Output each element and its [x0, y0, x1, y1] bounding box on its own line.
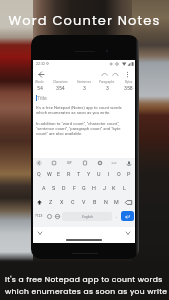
staticText: Characters	[53, 80, 68, 84]
staticText: B	[93, 199, 97, 205]
button[interactable]: Redo	[111, 70, 120, 79]
button[interactable]: .	[113, 209, 121, 223]
button[interactable]: Stickers	[51, 160, 57, 166]
staticText: V	[82, 199, 86, 205]
button[interactable]: Undo	[100, 70, 109, 79]
button[interactable]: E	[54, 167, 64, 181]
button[interactable]: Change language	[53, 209, 61, 223]
button[interactable]: Clipboard	[82, 160, 88, 166]
button[interactable]: W	[44, 167, 54, 181]
staticText: It's a free Notepad app to count words	[5, 274, 163, 285]
staticText: F	[73, 185, 76, 191]
button[interactable]: B	[89, 195, 100, 209]
staticText: M	[114, 199, 119, 205]
staticText: ?123	[35, 214, 43, 218]
staticText: U	[97, 171, 101, 177]
button[interactable]: Y	[84, 167, 94, 181]
button[interactable]: V	[78, 195, 89, 209]
button[interactable]: English	[62, 212, 112, 221]
staticText: E	[57, 171, 61, 177]
staticText: Sentences	[77, 80, 91, 84]
staticText: Paragraphs	[99, 80, 115, 84]
staticText: D	[62, 185, 66, 191]
button[interactable]: GIF	[65, 160, 73, 166]
button[interactable]: Back	[37, 70, 46, 79]
staticText: O	[117, 171, 121, 177]
staticText: T	[77, 171, 81, 177]
staticText: K	[112, 185, 116, 191]
staticText: 54	[37, 85, 43, 91]
staticText: C	[71, 199, 75, 205]
staticText: In addition to "word count", "character …	[36, 121, 121, 136]
staticText: G	[82, 185, 86, 191]
staticText: 354	[56, 85, 65, 91]
button[interactable]: G	[79, 181, 89, 195]
staticText: English	[82, 215, 93, 219]
staticText: It's a free Notepad (Notes) app to count…	[36, 105, 122, 115]
button[interactable]: X	[56, 195, 67, 209]
staticText: W	[47, 171, 52, 177]
staticText: Z	[49, 199, 53, 205]
button[interactable]: P	[124, 167, 134, 181]
staticText: 3	[83, 85, 86, 91]
button[interactable]: Z	[46, 195, 56, 209]
button[interactable]: U	[94, 167, 104, 181]
staticText: I	[108, 171, 110, 177]
button[interactable]: L	[119, 181, 129, 195]
staticText: Words	[35, 80, 44, 84]
staticText: which enumerates as soon as you write	[5, 286, 168, 297]
button[interactable]: K	[109, 181, 119, 195]
button[interactable]: C	[67, 195, 78, 209]
button[interactable]: Google assistant	[36, 160, 42, 166]
button[interactable]: Q	[34, 167, 44, 181]
button[interactable]: H	[89, 181, 99, 195]
button[interactable]: D	[59, 181, 69, 195]
staticText: 22:32	[36, 62, 45, 66]
button[interactable]: More options	[123, 70, 132, 79]
button[interactable]: F	[69, 181, 79, 195]
staticText: Title	[37, 95, 47, 101]
button[interactable]: Backspace	[122, 195, 135, 209]
staticText: R	[67, 171, 71, 177]
button[interactable]: Settings	[97, 160, 103, 166]
staticText: 3	[106, 85, 109, 91]
button[interactable]: Shift	[33, 195, 46, 209]
button[interactable]: O	[114, 167, 124, 181]
staticText: P	[127, 171, 131, 177]
staticText: Word Counter Notes	[0, 11, 169, 29]
staticText: X	[60, 199, 64, 205]
button[interactable]: T	[74, 167, 84, 181]
button[interactable]: N	[100, 195, 111, 209]
staticText: Y	[87, 171, 91, 177]
button[interactable]: Enter	[121, 211, 134, 221]
button[interactable]: S	[49, 181, 59, 195]
staticText: L	[123, 185, 126, 191]
staticText: Bytes	[125, 80, 133, 84]
staticText: A	[42, 185, 46, 191]
button[interactable]: Voice input	[126, 160, 132, 166]
staticText: J	[103, 185, 106, 191]
button[interactable]: ?123	[33, 209, 45, 223]
staticText: Q	[37, 171, 41, 177]
staticText: 358	[124, 85, 133, 91]
button[interactable]: A	[39, 181, 49, 195]
button[interactable]: J	[99, 181, 109, 195]
button[interactable]: I	[104, 167, 114, 181]
staticText: S	[52, 185, 56, 191]
button[interactable]: More	[111, 160, 117, 166]
staticText: GIF	[67, 161, 72, 165]
staticText: N	[104, 199, 108, 205]
staticText: .	[116, 213, 118, 219]
button[interactable]: R	[64, 167, 74, 181]
button[interactable]: M	[111, 195, 122, 209]
button[interactable]: Emoji	[45, 209, 53, 223]
staticText: H	[92, 185, 96, 191]
